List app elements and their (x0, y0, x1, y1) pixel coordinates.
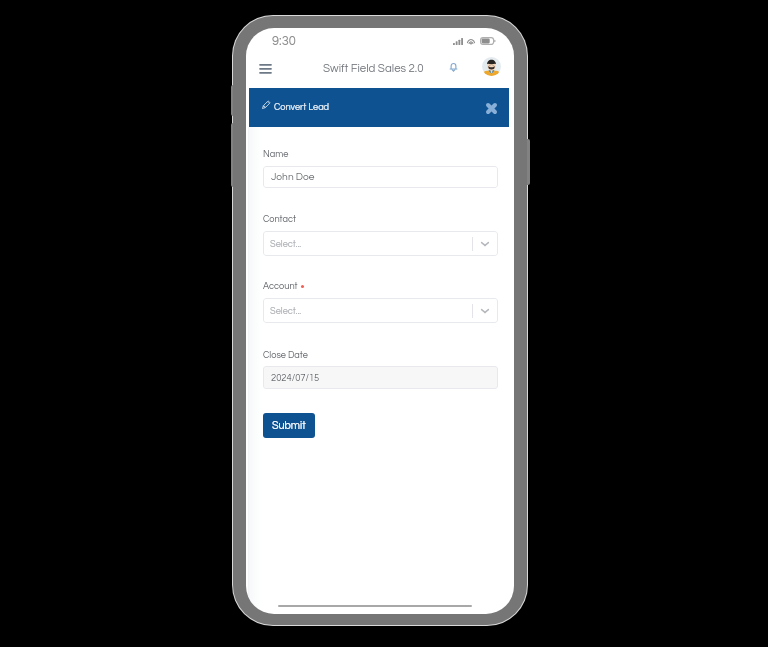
staticText: Name (263, 149, 289, 158)
staticText: Select... (270, 306, 302, 315)
staticText: Submit (272, 420, 306, 431)
staticText: John Doe (271, 172, 315, 183)
button[interactable]: Menu (254, 57, 277, 79)
button[interactable]: Select... (263, 298, 498, 323)
button[interactable]: Convert Lead (249, 88, 509, 127)
button[interactable]: Notifications (443, 56, 463, 76)
staticText: Contact (263, 214, 296, 223)
staticText: Close Date (263, 350, 308, 359)
button[interactable]: Select... (263, 231, 498, 256)
staticText: Account (263, 281, 298, 290)
staticText: Convert Lead (274, 102, 330, 111)
button[interactable]: Submit (263, 413, 315, 438)
button[interactable]: Close (483, 100, 499, 116)
button[interactable]: Profile (482, 57, 501, 76)
staticText: 9:30 (272, 35, 296, 48)
staticText: 2024/07/15 (271, 373, 320, 383)
button[interactable]: 2024/07/15 (263, 366, 498, 389)
button[interactable]: John Doe (263, 166, 498, 188)
staticText: Swift Field Sales 2.0 (323, 63, 424, 75)
staticText: Select... (270, 239, 302, 248)
